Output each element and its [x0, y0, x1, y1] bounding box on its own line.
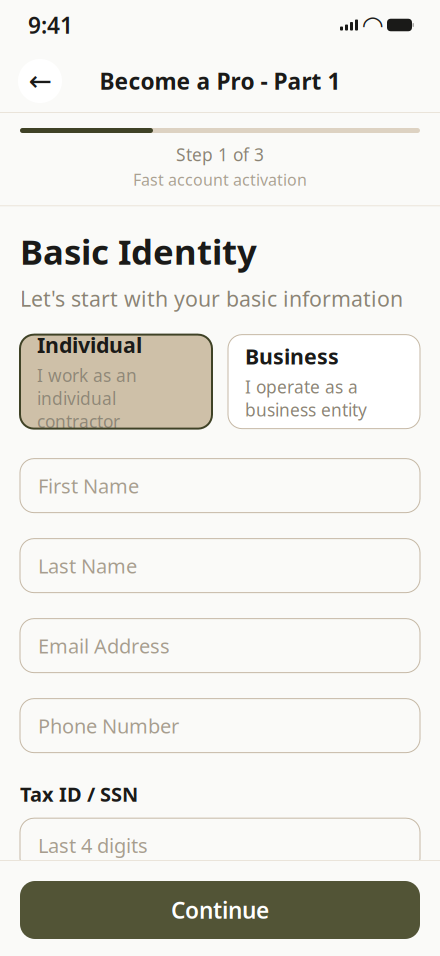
staticText: First Name [38, 472, 139, 499]
staticText: 9:41 [28, 10, 73, 40]
button[interactable]: Continue [20, 881, 420, 939]
staticText: Fast account activation [133, 169, 307, 190]
staticText: Last 4 digits [38, 832, 148, 858]
button[interactable]: Last Name [20, 539, 420, 593]
button[interactable]: Individual [20, 335, 212, 429]
button[interactable]: Back [18, 59, 62, 103]
staticText: Email Address [38, 632, 170, 659]
staticText: I work as an individual contractor [37, 364, 137, 433]
staticText: Tax ID / SSN [20, 781, 138, 807]
staticText: Last Name [38, 552, 137, 579]
button[interactable]: Phone Number [20, 699, 420, 753]
button[interactable]: Last 4 digits [20, 818, 420, 872]
staticText: Phone Number [38, 712, 179, 739]
staticText: Business [245, 342, 339, 370]
staticText: Required for tax reporting [20, 880, 235, 903]
staticText: Languages Spoken [20, 927, 208, 954]
staticText: Let's start with your basic information [20, 284, 403, 313]
staticText: Individual [37, 330, 142, 359]
button[interactable]: Business [228, 335, 420, 429]
staticText: Become a Pro - Part 1 [99, 66, 340, 96]
button[interactable]: Email Address [20, 619, 420, 673]
staticText: I operate as a business entity [245, 375, 367, 421]
staticText: Step 1 of 3 [176, 143, 264, 166]
staticText: Basic Identity [20, 228, 257, 274]
button[interactable]: First Name [20, 459, 420, 513]
staticText: ← [28, 65, 51, 97]
staticText: Continue [171, 895, 269, 925]
staticText: ◠ [363, 11, 382, 39]
